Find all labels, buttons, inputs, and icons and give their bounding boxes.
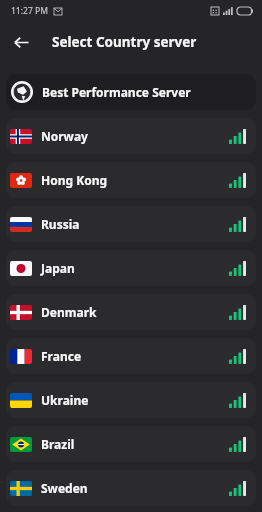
staticText: Russia [41,216,229,232]
button[interactable]: Brazil [6,426,256,462]
staticText: France [41,348,229,364]
button[interactable]: Japan [6,250,256,286]
staticText: Brazil [41,436,229,452]
staticText: Select Country server [52,33,197,51]
button[interactable]: France [6,338,256,374]
button[interactable]: Norway [6,118,256,154]
button[interactable]: Russia [6,206,256,242]
button[interactable]: Back [8,29,34,55]
button[interactable]: Hong Kong [6,162,256,198]
staticText: Denmark [41,304,229,320]
staticText: Ukraine [41,392,229,408]
staticText: Norway [41,128,229,144]
button[interactable]: Denmark [6,294,256,330]
staticText: Hong Kong [41,172,229,188]
staticText: Japan [41,260,229,276]
button[interactable]: Ukraine [6,382,256,418]
staticText: Best Performance Server [42,84,191,100]
staticText: 11:27 PM [11,5,48,17]
button[interactable]: Best Performance Server [6,74,256,110]
button[interactable]: Sweden [6,470,256,506]
staticText: Sweden [41,480,229,496]
